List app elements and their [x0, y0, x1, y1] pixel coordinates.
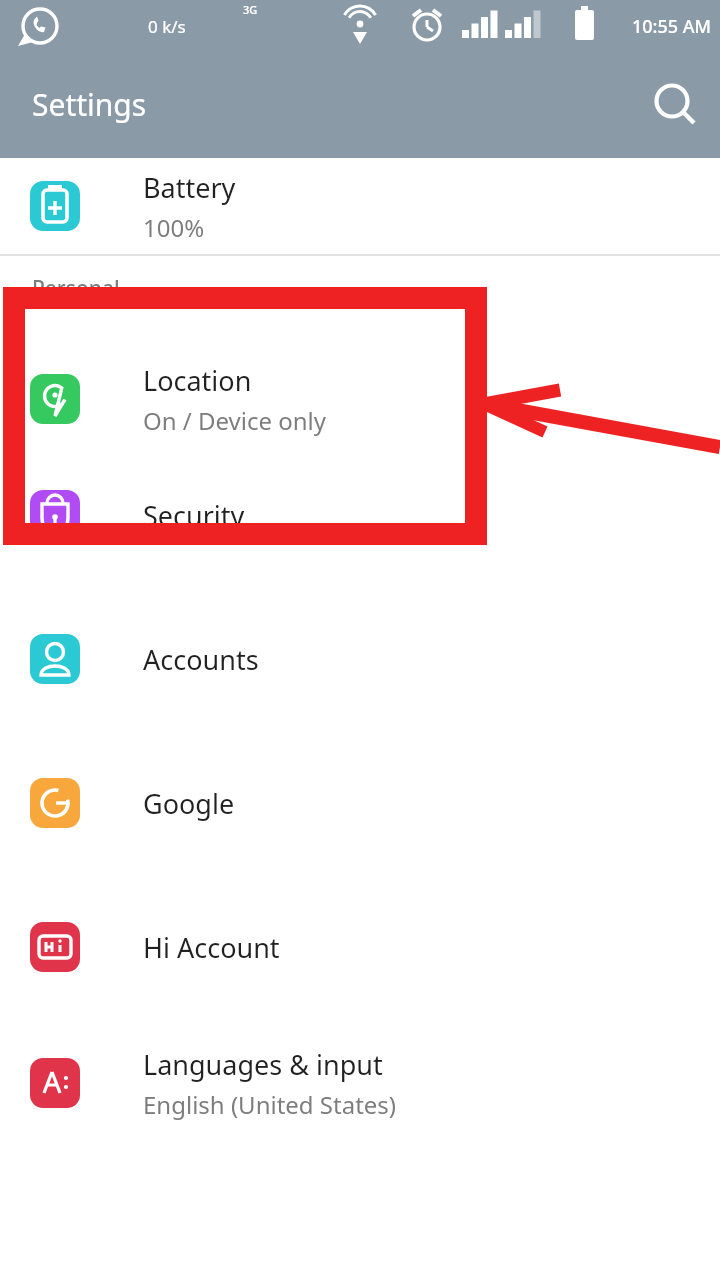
button[interactable]: Accounts [0, 587, 720, 731]
button[interactable]: Hi Account [0, 875, 720, 1019]
button[interactable]: Security [0, 443, 720, 587]
staticText: Battery [143, 169, 236, 206]
button[interactable]: Search [644, 74, 706, 136]
staticText: Languages & input [143, 1046, 383, 1083]
button[interactable]: Google [0, 731, 720, 875]
staticText: Accounts [143, 641, 259, 678]
button[interactable]: Location [0, 355, 720, 443]
staticText: Security [143, 497, 245, 534]
button[interactable]: Languages & input [0, 1019, 720, 1147]
staticText: Hi Account [143, 929, 280, 966]
staticText: 10:55 AM [632, 14, 712, 39]
staticText: 3G [243, 2, 258, 17]
staticText: 0 k/s [148, 15, 186, 38]
staticText: English (United States) [143, 1088, 397, 1121]
staticText: 100% [143, 211, 205, 244]
button[interactable]: Battery [0, 158, 720, 254]
staticText: Google [143, 785, 235, 822]
staticText: Personal [32, 274, 120, 303]
staticText: Location [143, 362, 252, 399]
staticText: On / Device only [143, 404, 327, 437]
staticText: Settings [32, 84, 147, 125]
